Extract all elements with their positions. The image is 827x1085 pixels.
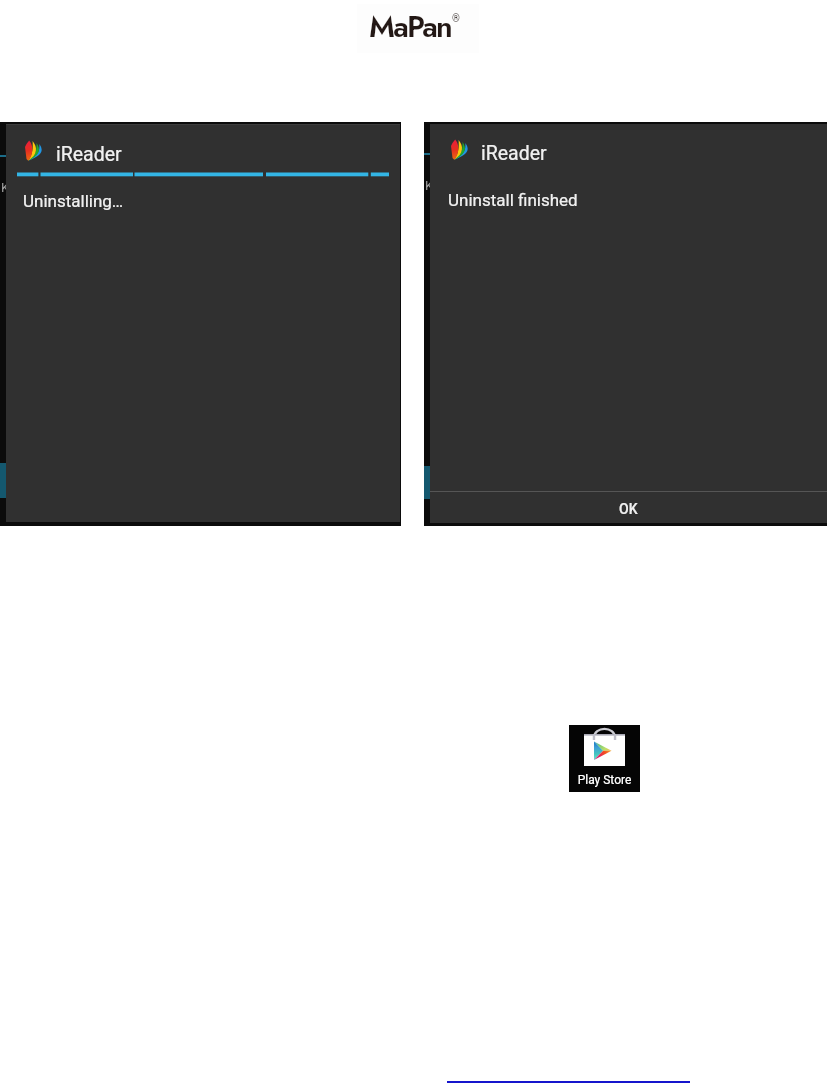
button[interactable]: OK	[430, 492, 827, 526]
staticText: MaPan	[369, 5, 452, 48]
staticText: Uninstalling…	[23, 191, 124, 211]
staticText: iReader	[481, 142, 547, 165]
staticText: OK	[619, 501, 638, 517]
staticText: iReader	[56, 143, 122, 166]
staticText: ®	[452, 13, 460, 25]
staticText: K	[1, 180, 7, 195]
button[interactable]: Play Store	[569, 725, 640, 792]
staticText: Uninstall finished	[448, 190, 578, 210]
staticText: Play Store	[569, 773, 640, 787]
staticText: K	[425, 178, 431, 193]
